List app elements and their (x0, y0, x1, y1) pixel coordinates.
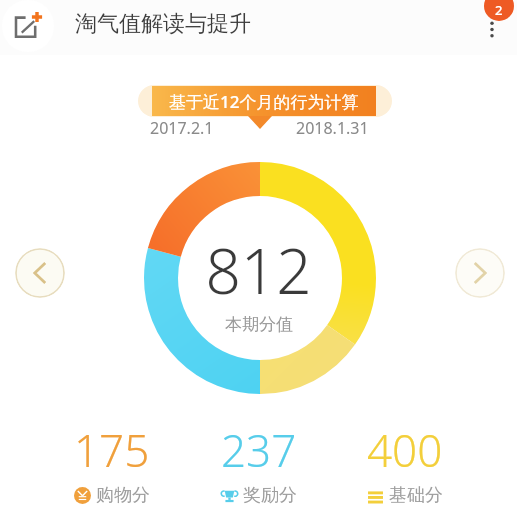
button[interactable]: Previous (15, 248, 65, 298)
button[interactable]: More options (470, 0, 514, 55)
staticText: 400 (367, 420, 443, 480)
button[interactable]: 175 (64, 420, 160, 507)
button[interactable]: Next (455, 248, 505, 298)
staticText: 本期分值 (225, 314, 293, 335)
staticText: 237 (221, 420, 297, 480)
staticText: 基于近12个月的行为计算 (169, 90, 359, 113)
staticText: 基础分 (389, 484, 443, 507)
staticText: 购物分 (96, 484, 150, 507)
staticText: 2017.2.1 (150, 117, 214, 139)
button[interactable]: 400 (357, 420, 453, 507)
staticText: 奖励分 (243, 484, 297, 507)
staticText: 淘气值解读与提升 (75, 10, 251, 38)
staticText: 2018.1.31 (296, 117, 369, 139)
button[interactable]: 237 (211, 420, 307, 507)
button[interactable]: App shortcut (2, 0, 54, 52)
staticText: 812 (205, 228, 312, 312)
staticText: 175 (74, 420, 150, 480)
staticText: 2 (495, 1, 503, 19)
